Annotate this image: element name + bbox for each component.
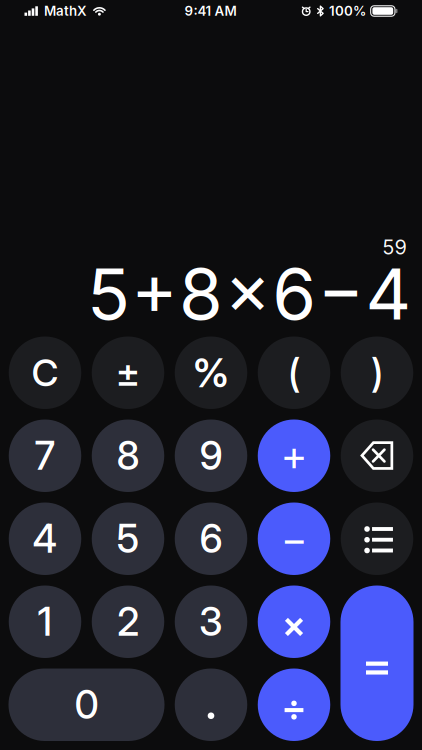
button[interactable]: 5 <box>91 502 164 575</box>
button[interactable]: 6 <box>174 502 247 575</box>
staticText: 9:41 AM <box>184 3 236 19</box>
button[interactable]: Decimal point <box>174 668 247 741</box>
button[interactable]: 2 <box>91 585 164 658</box>
staticText: MathX <box>44 3 87 19</box>
button[interactable]: Backspace <box>340 419 413 492</box>
button[interactable]: 1 <box>8 585 81 658</box>
staticText: 59 <box>382 235 406 259</box>
staticText: 5+8×6−4 <box>87 251 411 336</box>
staticText: 5 <box>116 515 139 562</box>
button[interactable]: 4 <box>8 502 81 575</box>
staticText: − <box>281 514 307 564</box>
button[interactable]: % <box>174 336 247 409</box>
staticText: ( <box>288 349 300 396</box>
staticText: 8 <box>116 432 139 479</box>
staticText: ± <box>115 349 140 396</box>
button[interactable]: 9 <box>174 419 247 492</box>
staticText: 3 <box>199 598 223 645</box>
button[interactable]: Equals <box>340 585 413 741</box>
staticText: C <box>31 350 58 395</box>
staticText: 4 <box>32 515 57 562</box>
button[interactable]: ( <box>257 336 330 409</box>
staticText: 1 <box>37 598 52 645</box>
staticText: 2 <box>117 598 139 645</box>
button[interactable]: − <box>257 502 330 575</box>
staticText: + <box>281 431 307 481</box>
staticText: % <box>192 349 229 397</box>
button[interactable]: ± <box>91 336 164 409</box>
staticText: 100% <box>329 3 366 19</box>
button[interactable]: 0 <box>8 668 164 741</box>
button[interactable]: + <box>257 419 330 492</box>
button[interactable]: 8 <box>91 419 164 492</box>
button[interactable]: Divide <box>257 668 330 741</box>
staticText: 0 <box>74 681 98 728</box>
staticText: 9 <box>199 432 222 479</box>
button[interactable]: 7 <box>8 419 81 492</box>
staticText: 6 <box>199 515 222 562</box>
button[interactable]: History <box>340 502 413 575</box>
button[interactable]: C <box>8 336 81 409</box>
staticText: ) <box>371 349 383 396</box>
button[interactable]: 3 <box>174 585 247 658</box>
staticText: 7 <box>34 432 55 479</box>
button[interactable]: Multiply <box>257 585 330 658</box>
button[interactable]: ) <box>340 336 413 409</box>
